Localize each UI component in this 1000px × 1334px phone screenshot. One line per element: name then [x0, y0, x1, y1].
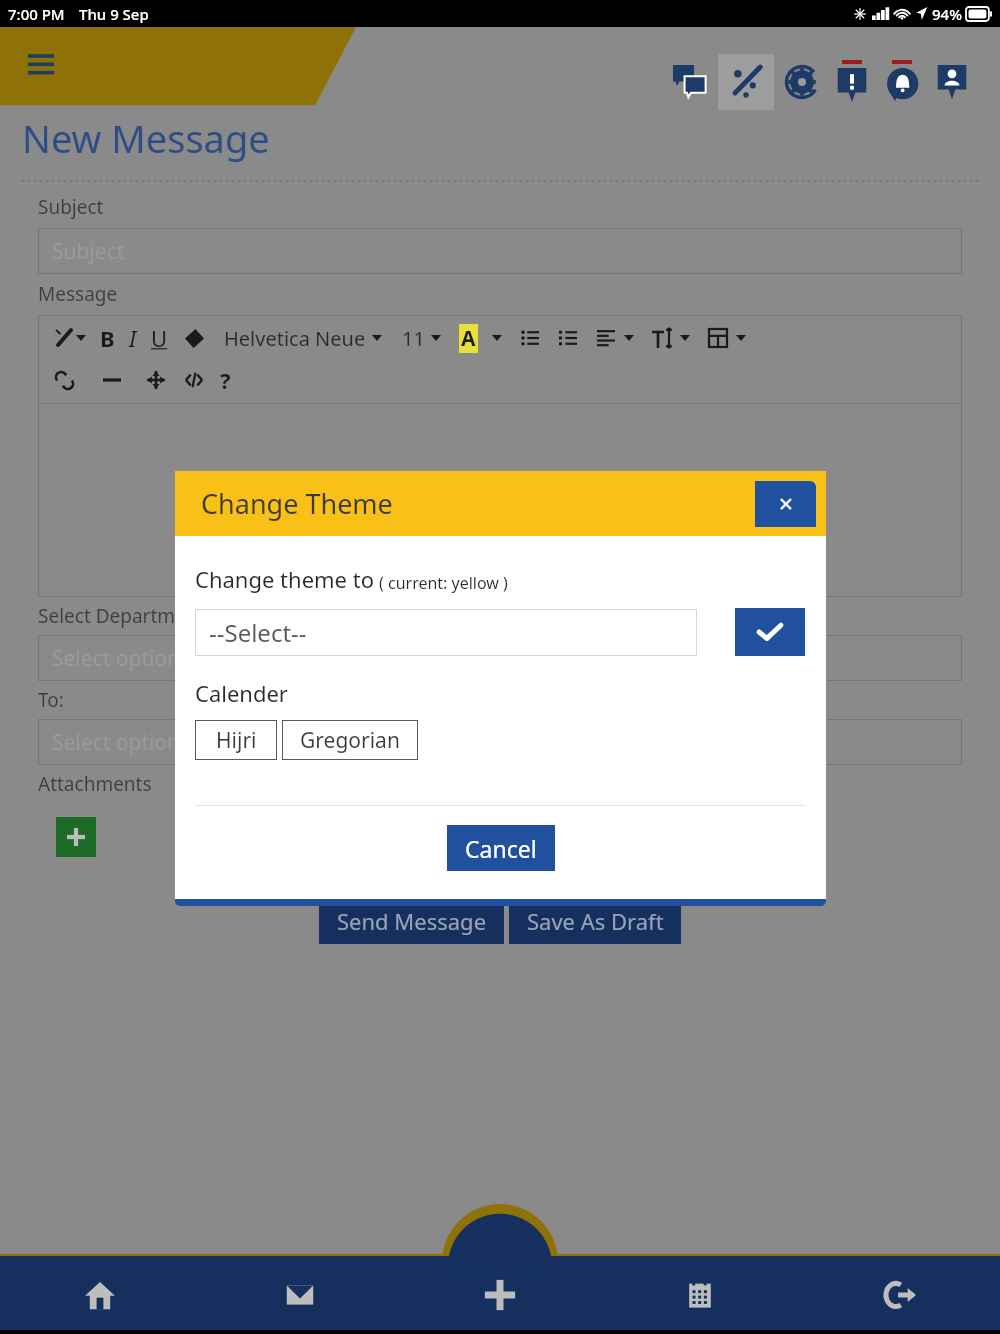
staticText: 94% — [932, 4, 962, 24]
staticText: Gregorian — [300, 726, 400, 755]
button[interactable] — [52, 326, 76, 350]
button[interactable]: Announcements — [830, 60, 874, 104]
button[interactable]: U — [151, 323, 168, 353]
button[interactable] — [556, 326, 580, 350]
button[interactable]: B — [100, 323, 115, 353]
button[interactable]: I — [129, 323, 137, 353]
button[interactable]: Cancel — [447, 825, 555, 871]
staticText: Select option — [52, 728, 181, 757]
staticText: Subject — [38, 194, 104, 220]
button[interactable]: Add attachment — [56, 817, 96, 857]
button[interactable]: Language — [668, 60, 712, 104]
staticText: Message — [38, 281, 118, 307]
button[interactable]: Change theme — [718, 54, 774, 110]
button[interactable]: Mail — [200, 1256, 400, 1334]
staticText: Cancel — [465, 833, 537, 864]
button[interactable] — [52, 368, 76, 392]
button[interactable]: Calendar — [600, 1256, 800, 1334]
staticText: 11 — [402, 325, 425, 352]
staticText: 7:00 PM — [8, 4, 65, 24]
staticText: New Message — [22, 112, 270, 164]
staticText: Attachments — [38, 771, 152, 797]
staticText: Subject — [52, 237, 125, 266]
button[interactable]: Menu — [22, 45, 60, 83]
button[interactable] — [650, 326, 674, 350]
button[interactable]: --Select-- — [195, 609, 697, 656]
staticText: Select Department: — [38, 603, 210, 629]
button[interactable] — [100, 368, 124, 392]
button[interactable]: Gregorian — [282, 720, 418, 760]
button[interactable]: New — [400, 1256, 600, 1334]
button[interactable]: Profile — [930, 60, 974, 104]
staticText: To: — [38, 687, 64, 713]
button[interactable]: Hijri — [195, 720, 277, 760]
button[interactable]: Send Message — [319, 898, 504, 944]
button[interactable]: Select option — [38, 719, 962, 765]
button[interactable]: A — [461, 324, 476, 353]
button[interactable]: Home — [0, 1256, 200, 1334]
staticText: A — [461, 324, 476, 353]
button[interactable]: Save As Draft — [509, 898, 681, 944]
staticText: Thu 9 Sep — [79, 4, 149, 24]
staticText: Hijri — [216, 726, 257, 755]
staticText: ? — [220, 365, 231, 395]
button[interactable]: Close — [755, 481, 816, 527]
staticText: Send Message — [337, 906, 487, 936]
staticText: Calender — [195, 678, 288, 708]
button[interactable] — [38, 403, 962, 597]
staticText: U — [151, 323, 168, 353]
button[interactable] — [182, 326, 206, 350]
button[interactable]: Refresh settings — [780, 60, 824, 104]
button[interactable] — [594, 326, 618, 350]
staticText: B — [100, 323, 115, 353]
staticText: --Select-- — [209, 616, 307, 649]
button[interactable]: Select option — [38, 635, 962, 681]
button[interactable] — [182, 368, 206, 392]
staticText: Helvetica Neue — [224, 325, 366, 352]
staticText: Save As Draft — [527, 906, 664, 936]
button[interactable] — [144, 368, 168, 392]
staticText: Change Theme — [201, 485, 393, 522]
button[interactable] — [706, 326, 730, 350]
button[interactable] — [518, 326, 542, 350]
staticText: Change theme to — [195, 564, 374, 594]
button[interactable]: Apply theme — [735, 608, 805, 656]
staticText: ( current: yellow ) — [379, 572, 508, 594]
button[interactable]: Notifications — [880, 60, 924, 104]
staticText: I — [129, 323, 137, 353]
staticText: ✕ — [778, 493, 794, 515]
button[interactable]: Subject — [38, 228, 962, 274]
staticText: Select option — [52, 644, 181, 673]
button[interactable]: Logout — [800, 1256, 1000, 1334]
